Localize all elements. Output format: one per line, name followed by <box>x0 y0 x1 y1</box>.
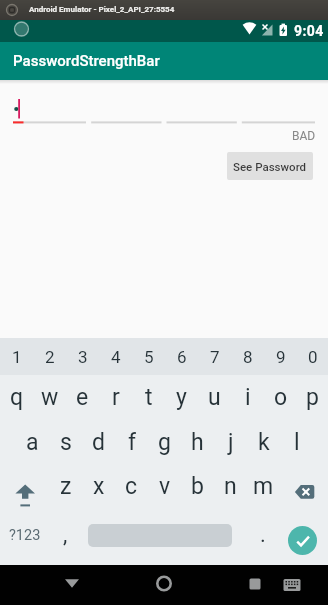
staticText: 9:04 <box>294 23 324 39</box>
staticText: a <box>26 429 39 456</box>
button[interactable]: l <box>280 420 313 464</box>
staticText: BAD <box>292 129 316 143</box>
staticText: i <box>245 384 251 411</box>
staticText: v <box>159 473 171 500</box>
staticText: 6 <box>177 347 187 367</box>
button[interactable]: 6 <box>165 338 198 375</box>
button[interactable]: b <box>181 464 214 509</box>
staticText: z <box>60 473 72 500</box>
button[interactable]: 7 <box>198 338 231 375</box>
button[interactable]: t <box>132 375 165 420</box>
button[interactable]: x <box>82 464 115 509</box>
button[interactable]: f <box>115 420 148 464</box>
button[interactable]: n <box>214 464 247 509</box>
staticText: h <box>191 429 204 456</box>
staticText: u <box>208 384 221 411</box>
staticText: p <box>306 384 319 411</box>
staticText: 7 <box>210 347 220 367</box>
button[interactable]: y <box>165 375 198 420</box>
staticText: y <box>176 384 187 411</box>
staticText: d <box>92 429 105 456</box>
button[interactable]: 0 <box>297 338 328 375</box>
button[interactable]: ?123 <box>0 509 49 561</box>
button[interactable]: c <box>115 464 148 509</box>
staticText: 1 <box>12 347 22 367</box>
button[interactable]: i <box>231 375 264 420</box>
button[interactable]: j <box>214 420 247 464</box>
button[interactable] <box>0 90 328 138</box>
staticText: 0 <box>308 347 318 367</box>
staticText: 4 <box>111 347 121 367</box>
button[interactable]: . <box>246 509 279 561</box>
button[interactable]: h <box>181 420 214 464</box>
button[interactable]: 5 <box>132 338 165 375</box>
staticText: l <box>294 429 300 456</box>
button[interactable]: o <box>264 375 297 420</box>
staticText: r <box>112 384 120 411</box>
staticText: 5 <box>144 347 154 367</box>
button[interactable] <box>241 569 269 597</box>
staticText: See Password <box>233 160 307 173</box>
staticText: m <box>253 473 274 500</box>
button[interactable]: 1 <box>0 338 33 375</box>
button[interactable]: 3 <box>66 338 99 375</box>
staticText: g <box>158 429 171 456</box>
button[interactable]: w <box>33 375 66 420</box>
staticText: 8 <box>243 347 253 367</box>
staticText: PasswordStrengthBar <box>13 52 160 70</box>
button[interactable]: p <box>297 375 328 420</box>
staticText: 2 <box>45 347 55 367</box>
staticText: o <box>274 384 288 411</box>
button[interactable]: , <box>49 509 82 561</box>
staticText: Android Emulator - Pixel_2_API_27:5554 <box>29 5 175 14</box>
button[interactable]: 9 <box>264 338 297 375</box>
button[interactable]: 2 <box>33 338 66 375</box>
staticText: k <box>258 429 270 456</box>
staticText: 9 <box>276 347 286 367</box>
staticText: 3 <box>78 347 88 367</box>
button[interactable]: d <box>82 420 115 464</box>
button[interactable] <box>278 569 306 597</box>
staticText: f <box>128 429 136 456</box>
button[interactable]: v <box>148 464 181 509</box>
staticText: e <box>76 384 89 411</box>
button[interactable] <box>58 569 86 597</box>
button[interactable]: a <box>16 420 49 464</box>
staticText: t <box>145 384 153 411</box>
staticText: n <box>224 473 237 500</box>
staticText: s <box>60 429 72 456</box>
button[interactable]: e <box>66 375 99 420</box>
staticText: q <box>10 384 24 411</box>
staticText: . <box>260 522 266 548</box>
button[interactable]: z <box>49 464 82 509</box>
button[interactable]: q <box>0 375 33 420</box>
button[interactable]: See Password <box>227 152 313 180</box>
button[interactable]: r <box>99 375 132 420</box>
button[interactable]: k <box>247 420 280 464</box>
button[interactable]: s <box>49 420 82 464</box>
staticText: w <box>41 384 59 411</box>
button[interactable]: m <box>247 464 280 509</box>
staticText: , <box>63 522 68 548</box>
button[interactable] <box>288 526 317 555</box>
button[interactable] <box>0 464 49 509</box>
button[interactable] <box>150 569 178 597</box>
staticText: ?123 <box>9 527 41 544</box>
button[interactable]: 4 <box>99 338 132 375</box>
button[interactable]: u <box>198 375 231 420</box>
staticText: b <box>191 473 204 500</box>
staticText: c <box>125 473 138 500</box>
staticText: j <box>228 429 234 456</box>
staticText: x <box>93 473 105 500</box>
button[interactable] <box>280 464 328 509</box>
button[interactable]: 8 <box>231 338 264 375</box>
button[interactable]: g <box>148 420 181 464</box>
